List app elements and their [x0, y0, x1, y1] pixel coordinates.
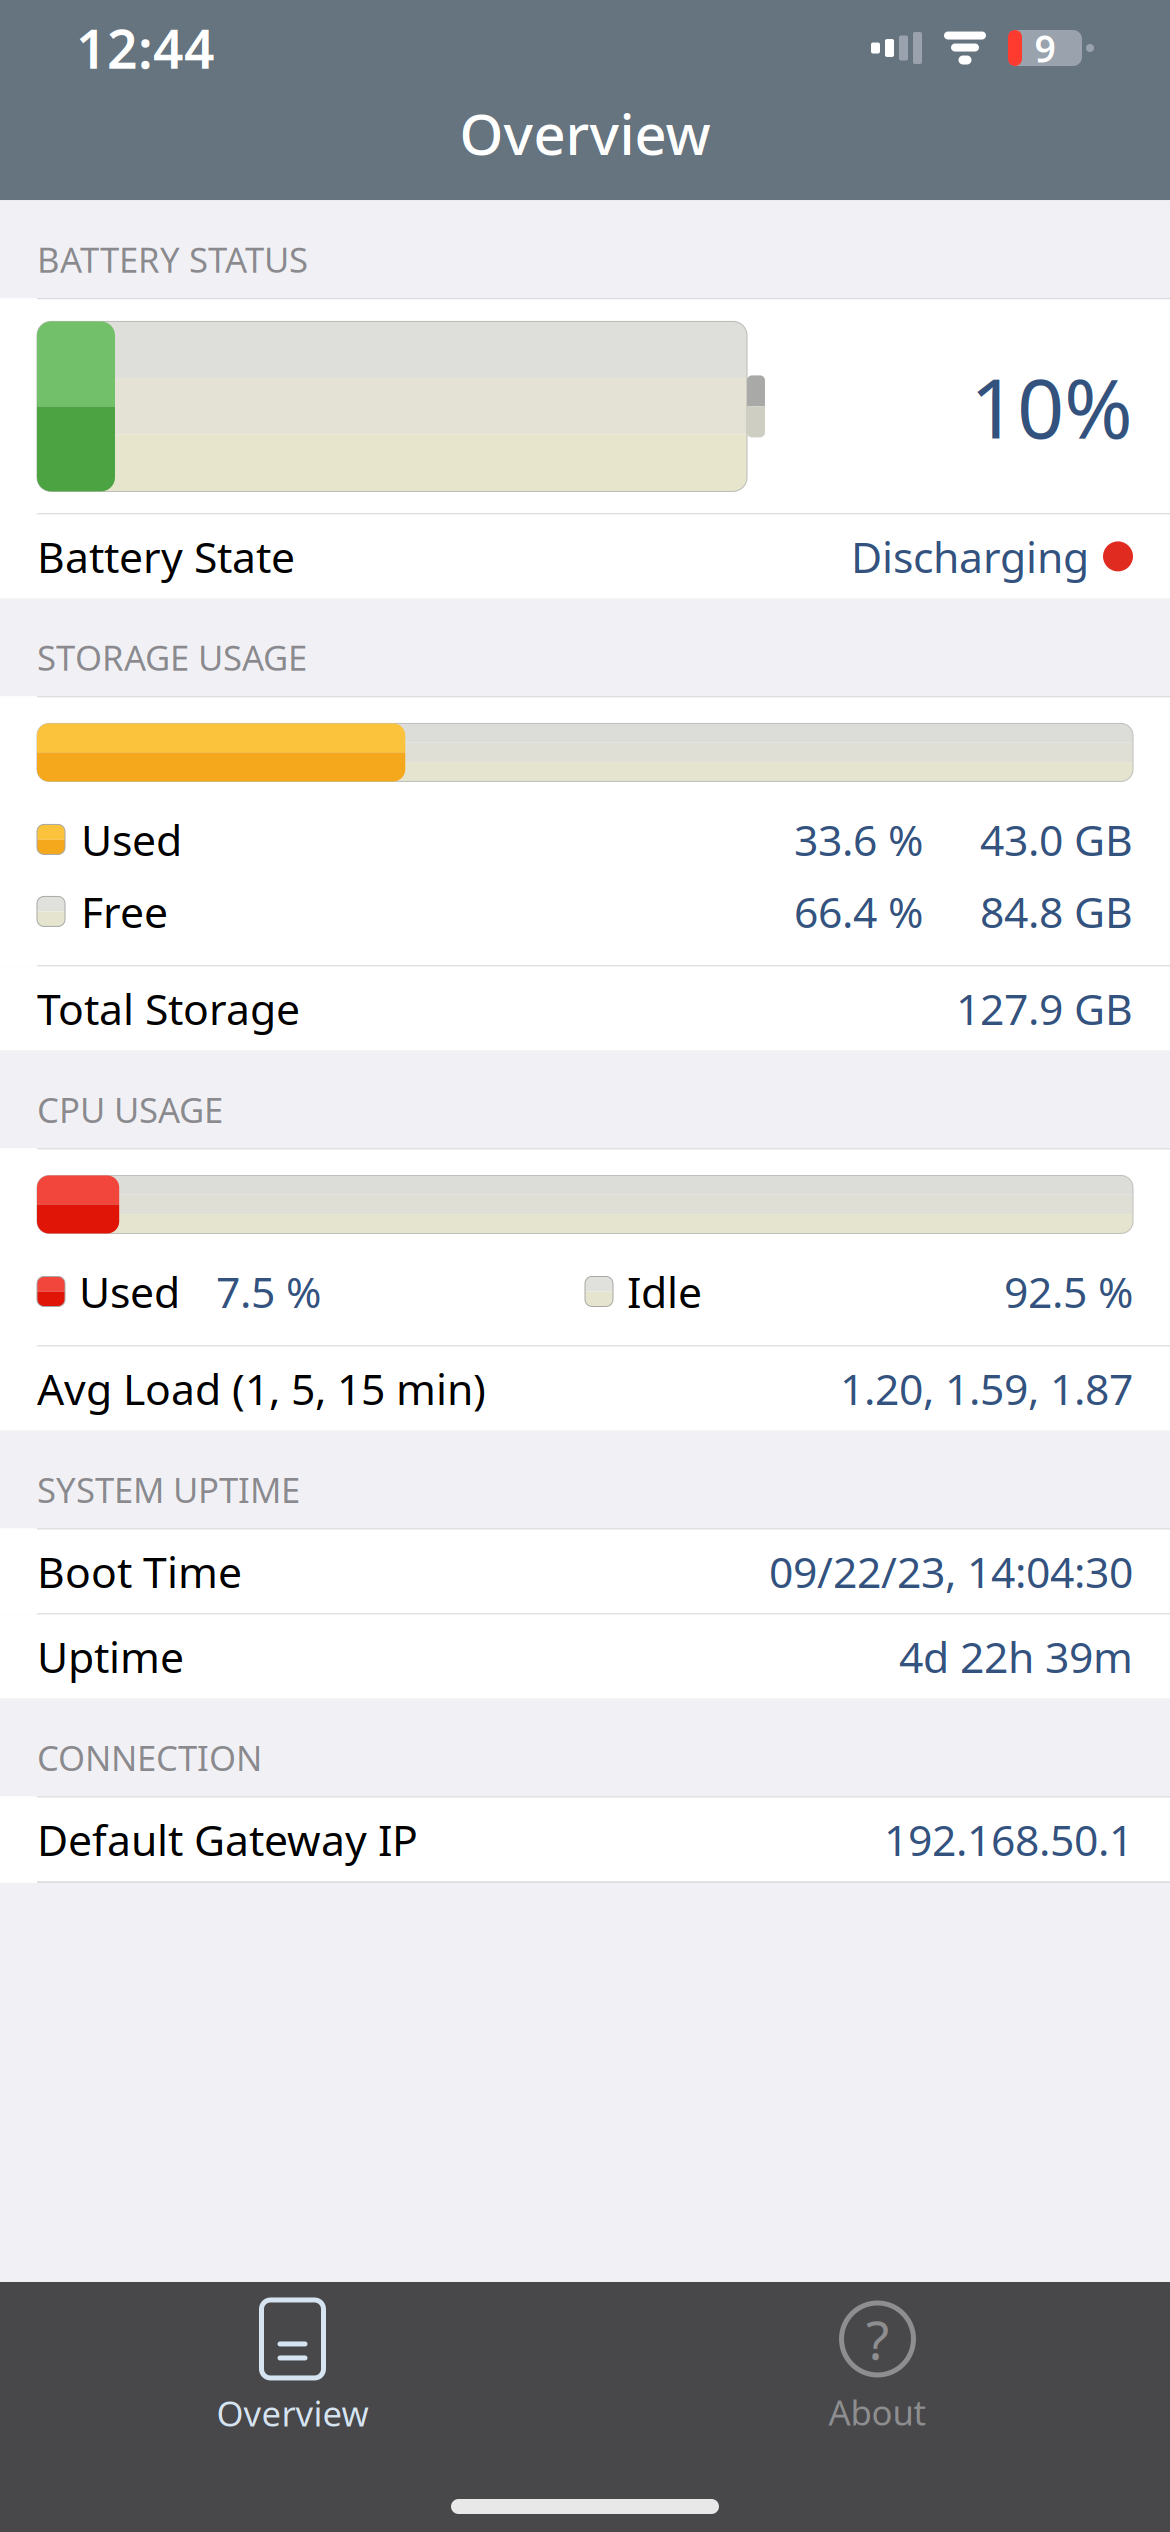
staticText: Discharging: [851, 528, 1089, 585]
button[interactable]: Boot Time: [0, 1529, 1170, 1613]
staticText: BATTERY STATUS: [37, 236, 308, 282]
button[interactable]: Avg Load (1, 5, 15 min): [0, 1346, 1170, 1430]
button[interactable]: Default Gateway IP: [0, 1797, 1170, 1881]
staticText: Avg Load (1, 5, 15 min): [37, 1360, 486, 1417]
staticText: 4d 22h 39m: [899, 1628, 1133, 1685]
staticText: CONNECTION: [37, 1734, 262, 1780]
staticText: Default Gateway IP: [37, 1811, 418, 1868]
staticText: Free: [81, 883, 168, 940]
staticText: 192.168.50.1: [884, 1811, 1133, 1868]
staticText: Used: [79, 1263, 180, 1320]
button[interactable]: Overview: [0, 2278, 585, 2436]
staticText: 9: [1034, 23, 1055, 73]
staticText: 10%: [970, 351, 1133, 461]
button[interactable]: Total Storage: [0, 966, 1170, 1050]
staticText: 33.6 %: [794, 811, 923, 868]
staticText: 7.5 %: [216, 1263, 321, 1320]
staticText: CPU USAGE: [37, 1086, 223, 1132]
staticText: 12:44: [76, 13, 215, 83]
staticText: Idle: [627, 1263, 702, 1320]
staticText: 84.8 GB: [980, 883, 1133, 940]
staticText: 43.0 GB: [980, 811, 1133, 868]
staticText: ?: [866, 2304, 889, 2374]
button[interactable]: Uptime: [0, 1614, 1170, 1698]
staticText: 92.5 %: [1004, 1263, 1133, 1320]
staticText: 127.9 GB: [956, 980, 1133, 1037]
staticText: STORAGE USAGE: [37, 634, 307, 680]
button[interactable]: ?: [585, 2279, 1170, 2435]
staticText: 09/22/23, 14:04:30: [769, 1543, 1133, 1600]
button[interactable]: Battery State: [0, 514, 1170, 598]
staticText: About: [828, 2389, 926, 2435]
staticText: Total Storage: [37, 980, 300, 1037]
staticText: Overview: [459, 96, 710, 170]
staticText: SYSTEM UPTIME: [37, 1466, 300, 1512]
staticText: Battery State: [37, 528, 295, 585]
staticText: Uptime: [37, 1628, 184, 1685]
staticText: 66.4 %: [794, 883, 923, 940]
staticText: Boot Time: [37, 1543, 242, 1600]
staticText: 1.20, 1.59, 1.87: [840, 1360, 1133, 1417]
staticText: Overview: [216, 2390, 368, 2436]
staticText: Used: [81, 811, 182, 868]
